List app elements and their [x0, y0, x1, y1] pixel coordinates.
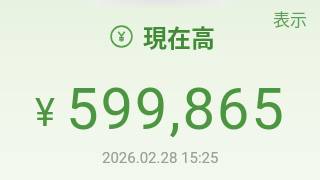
staticText: 599,865 — [66, 75, 286, 143]
staticText: 現在高 — [143, 19, 215, 54]
staticText: 2026.02.28 15:25 — [102, 149, 219, 167]
staticText: 表示 — [273, 6, 307, 31]
other: Balance — [109, 24, 134, 49]
staticText: ¥ — [35, 91, 55, 136]
button[interactable]: 表示 — [270, 3, 310, 34]
button[interactable]: Balance — [109, 19, 215, 54]
